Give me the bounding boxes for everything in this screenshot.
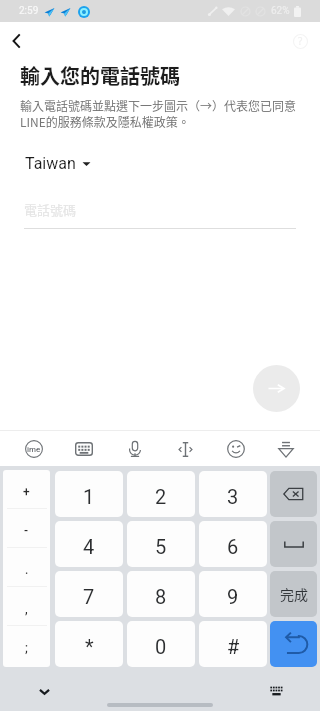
button[interactable]: Input method	[17, 432, 51, 466]
staticText: 4	[83, 535, 95, 558]
staticText: 2:59	[19, 5, 39, 17]
staticText: 8	[155, 585, 167, 608]
staticText: Taiwan	[25, 154, 76, 173]
staticText: 5	[155, 535, 167, 558]
button[interactable]: Hide keyboard	[269, 432, 303, 466]
staticText: 0	[155, 635, 167, 658]
staticText: *	[85, 635, 94, 658]
staticText: 1	[83, 485, 95, 508]
staticText: +	[23, 485, 30, 499]
button[interactable]: Next	[253, 365, 300, 412]
button[interactable]: 5	[127, 521, 195, 567]
staticText: 6	[227, 535, 239, 558]
staticText: 62%	[271, 5, 290, 17]
staticText: 輸入電話號碼並點選下一步圖示（→）代表您已同意LINE的服務條款及隱私權政策。	[20, 97, 299, 130]
staticText: 完成	[280, 584, 308, 604]
button[interactable]: 7	[55, 571, 123, 617]
button[interactable]: Hide keyboard	[30, 677, 58, 705]
button[interactable]: 6	[199, 521, 267, 567]
button[interactable]: Keyboard	[67, 432, 101, 466]
staticText: ime	[27, 445, 41, 454]
staticText: #	[227, 635, 240, 658]
button[interactable]: Voice input	[118, 432, 152, 466]
staticText: 2	[155, 485, 167, 508]
button[interactable]: 1	[55, 471, 123, 517]
button[interactable]: 0	[127, 621, 195, 667]
staticText: 電話號碼	[24, 200, 77, 219]
staticText: ,	[25, 602, 28, 616]
button[interactable]: 2	[127, 471, 195, 517]
button[interactable]: Back	[2, 27, 30, 55]
button[interactable]: Taiwan	[25, 154, 91, 173]
button[interactable]: 8	[127, 571, 195, 617]
button[interactable]: Emoji	[219, 432, 253, 466]
button[interactable]: *	[55, 621, 123, 667]
button[interactable]: ,	[3, 587, 50, 626]
button[interactable]: Enter	[270, 621, 317, 667]
button[interactable]: Switch keyboard	[262, 677, 290, 705]
staticText: ?	[298, 34, 303, 48]
button[interactable]: +	[3, 470, 50, 509]
staticText: 3	[227, 485, 239, 508]
button[interactable]: -	[3, 509, 50, 548]
staticText: ;	[25, 641, 28, 655]
button[interactable]: ;	[3, 626, 50, 665]
staticText: 9	[227, 585, 239, 608]
staticText: -	[24, 524, 29, 538]
button[interactable]: 4	[55, 521, 123, 567]
staticText: .	[25, 563, 29, 577]
staticText: 7	[83, 585, 95, 608]
button[interactable]: Backspace	[270, 471, 317, 517]
button[interactable]: 完成	[270, 571, 317, 617]
button[interactable]: #	[199, 621, 267, 667]
button[interactable]: 3	[199, 471, 267, 517]
button[interactable]: Space	[270, 521, 317, 567]
button[interactable]: .	[3, 548, 50, 587]
staticText: 輸入您的電話號碼	[20, 61, 180, 90]
button[interactable]: 9	[199, 571, 267, 617]
button[interactable]: Move cursor	[168, 432, 202, 466]
